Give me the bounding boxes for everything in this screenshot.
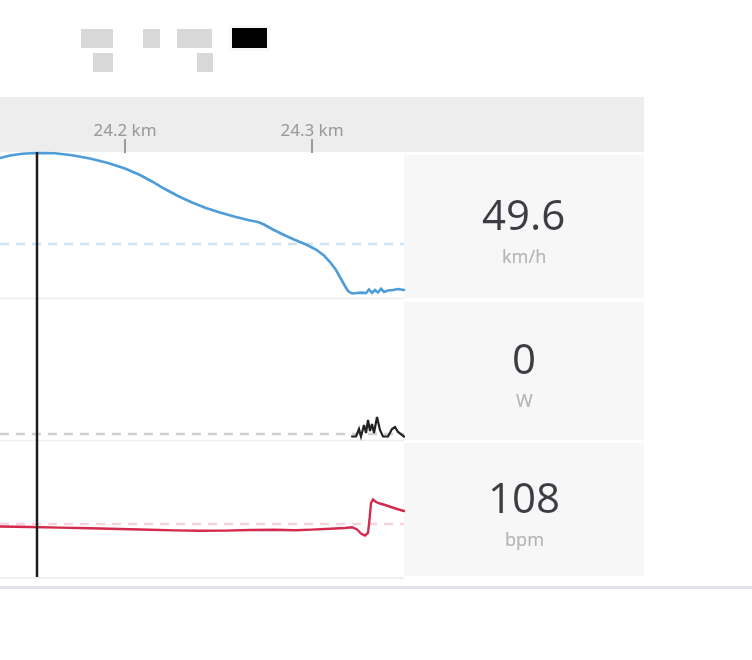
- button[interactable]: 0: [404, 302, 644, 440]
- staticText: 0: [512, 329, 537, 386]
- staticText: 49.6: [482, 185, 566, 242]
- staticText: W: [516, 388, 533, 413]
- staticText: 108: [488, 468, 561, 525]
- staticText: km/h: [502, 244, 547, 269]
- staticText: bpm: [505, 527, 544, 552]
- button[interactable]: 49.6: [404, 155, 644, 298]
- button[interactable]: Selected metric: [229, 25, 270, 51]
- button[interactable]: 108: [404, 443, 644, 576]
- staticText: 24.2 km: [84, 118, 166, 141]
- staticText: 24.3 km: [271, 118, 353, 141]
